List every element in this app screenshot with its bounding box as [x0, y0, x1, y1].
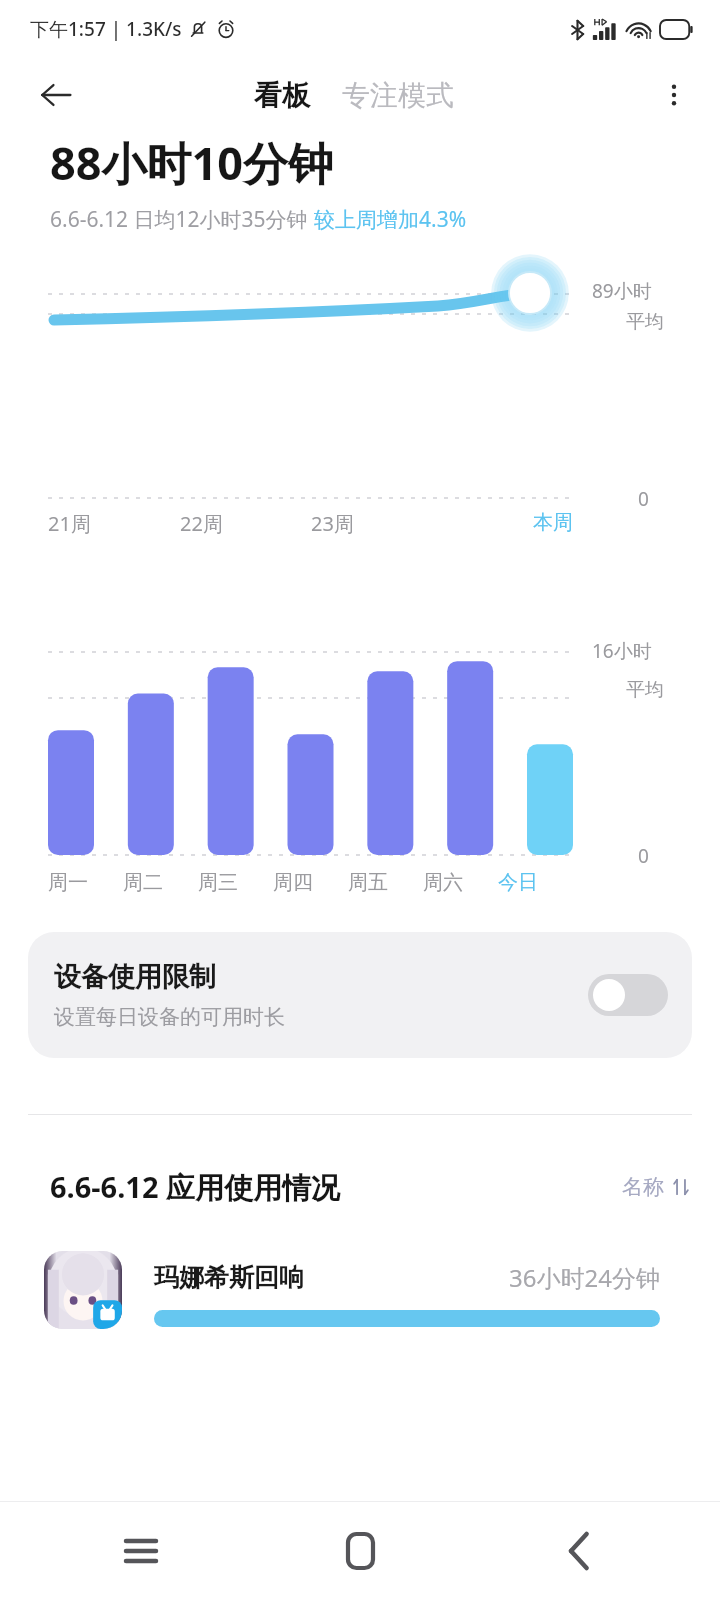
staticText: 0 [638, 486, 649, 512]
staticText: 平均 [592, 678, 664, 702]
staticText: 较上周增加4.3% [314, 205, 467, 234]
button[interactable]: 玛娜希斯回响 [0, 1251, 720, 1329]
button[interactable]: Toggle device usage limit [588, 974, 668, 1016]
staticText: 6.6-6.12 日均12小时35分钟 [50, 205, 314, 234]
staticText: 平均 [592, 310, 664, 334]
staticText: 周三 [198, 870, 238, 895]
staticText: 22周 [180, 510, 223, 537]
staticText: 玛娜希斯回响 [154, 1262, 304, 1293]
button[interactable]: Recent apps [110, 1520, 172, 1582]
button[interactable]: 专注模式 [336, 72, 460, 119]
staticText: 设置每日设备的可用时长 [54, 1004, 285, 1030]
staticText: 6.6-6.12 应用使用情况 [50, 1167, 341, 1207]
button[interactable]: 设备使用限制 [28, 932, 692, 1058]
staticText: 看板 [254, 78, 310, 113]
button[interactable]: Back [32, 71, 80, 119]
staticText: 周六 [423, 870, 463, 895]
staticText: 88小时10分钟 [50, 132, 333, 193]
staticText: 名称 [622, 1174, 664, 1200]
staticText: 本周 [533, 510, 573, 535]
button[interactable]: 名称 [618, 1170, 694, 1204]
staticText: 设备使用限制 [54, 960, 216, 994]
staticText: 16小时 [592, 638, 652, 664]
button[interactable]: More options [650, 71, 698, 119]
staticText: 36小时24分钟 [509, 1261, 660, 1294]
staticText: 周二 [123, 870, 163, 895]
button[interactable]: Home [329, 1520, 391, 1582]
staticText: 专注模式 [342, 78, 454, 113]
staticText: 23周 [311, 510, 354, 537]
button[interactable]: Back [548, 1520, 610, 1582]
staticText: 周一 [48, 870, 88, 895]
button[interactable]: 看板 [248, 72, 316, 119]
staticText: 21周 [48, 510, 91, 537]
staticText: 今日 [498, 870, 538, 895]
staticText: 0 [638, 843, 649, 869]
staticText: 周四 [273, 870, 313, 895]
staticText: 周五 [348, 870, 388, 895]
staticText: 下午1:57 | 1.3K/s [30, 16, 182, 42]
staticText: 89小时 [592, 278, 652, 304]
